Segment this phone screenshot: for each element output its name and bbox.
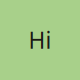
staticText: Hi [28,25,51,55]
